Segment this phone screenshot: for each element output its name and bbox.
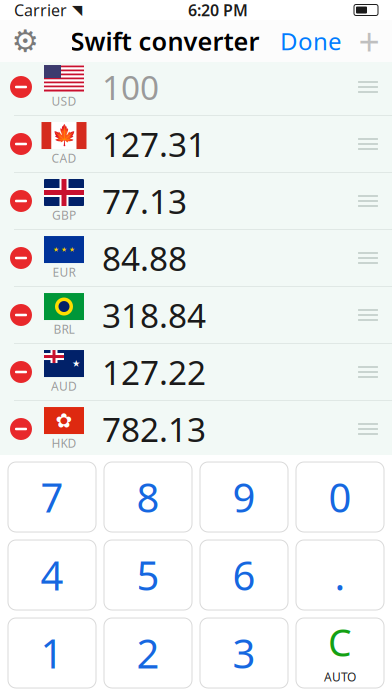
staticText: 0 <box>328 470 351 523</box>
button[interactable]: 1 <box>8 618 96 688</box>
button[interactable]: Reorder USD <box>358 59 392 115</box>
staticText: Carrier <box>14 0 67 21</box>
button[interactable]: Remove USD <box>0 59 40 115</box>
button[interactable]: 5 <box>104 540 192 610</box>
staticText: HKD <box>51 435 76 451</box>
staticText: 77.13 <box>102 179 187 223</box>
staticText: ◥ <box>72 2 82 17</box>
staticText: 9 <box>232 470 255 523</box>
staticText: AUTO <box>324 669 356 685</box>
button[interactable]: Reorder HKD <box>358 401 392 457</box>
button[interactable]: Remove CAD <box>0 116 40 172</box>
button[interactable]: Remove GBP <box>0 173 40 229</box>
button[interactable]: Settings <box>0 20 50 62</box>
staticText: C <box>328 617 352 667</box>
button[interactable]: 3 <box>200 618 288 688</box>
button[interactable]: Add currency <box>352 20 386 62</box>
staticText: ★ ★ ★ <box>53 246 75 253</box>
staticText: 5 <box>136 548 159 601</box>
staticText: 6:20 PM <box>188 0 248 21</box>
staticText: 318.84 <box>102 293 206 337</box>
staticText: 84.88 <box>102 236 187 280</box>
button[interactable]: 7 <box>8 462 96 532</box>
button[interactable]: 0 <box>296 462 384 532</box>
staticText: + <box>358 16 379 66</box>
staticText: 4 <box>40 548 63 601</box>
staticText: 2 <box>136 626 159 679</box>
button[interactable]: 8 <box>104 462 192 532</box>
button[interactable]: 2 <box>104 618 192 688</box>
button[interactable]: Reorder EUR <box>358 230 392 286</box>
staticText: . <box>334 548 345 601</box>
button[interactable]: Remove AUD <box>0 344 40 400</box>
button[interactable]: Reorder GBP <box>358 173 392 229</box>
button[interactable]: Reorder BRL <box>358 287 392 343</box>
staticText: 7 <box>40 470 63 523</box>
staticText: Done <box>280 25 342 57</box>
staticText: 3 <box>232 626 255 679</box>
staticText: USD <box>51 93 76 109</box>
button[interactable]: Remove HKD <box>0 401 40 457</box>
staticText: GBP <box>52 207 76 223</box>
staticText: 1 <box>40 626 63 679</box>
button[interactable]: 6 <box>200 540 288 610</box>
button[interactable]: Remove BRL <box>0 287 40 343</box>
staticText: AUD <box>51 378 77 394</box>
staticText: ⚙ <box>11 24 38 58</box>
button[interactable]: Remove EUR <box>0 230 40 286</box>
button[interactable]: 4 <box>8 540 96 610</box>
staticText: 127.31 <box>102 122 206 166</box>
staticText: CAD <box>51 150 76 166</box>
button[interactable]: Reorder CAD <box>358 116 392 172</box>
button[interactable]: C <box>296 618 384 688</box>
button[interactable]: . <box>296 540 384 610</box>
button[interactable]: Reorder AUD <box>358 344 392 400</box>
staticText: ✿ <box>55 409 72 432</box>
staticText: 🍁 <box>51 124 76 147</box>
staticText: Swift converter <box>70 24 259 58</box>
staticText: 127.22 <box>102 350 206 394</box>
staticText: 782.13 <box>102 407 206 451</box>
button[interactable]: Done <box>280 20 352 62</box>
staticText: 6 <box>232 548 255 601</box>
staticText: ★ <box>72 358 80 369</box>
staticText: BRL <box>53 321 74 337</box>
staticText: EUR <box>52 264 75 280</box>
staticText: 100 <box>102 65 159 109</box>
staticText: 8 <box>136 470 159 523</box>
button[interactable]: 9 <box>200 462 288 532</box>
